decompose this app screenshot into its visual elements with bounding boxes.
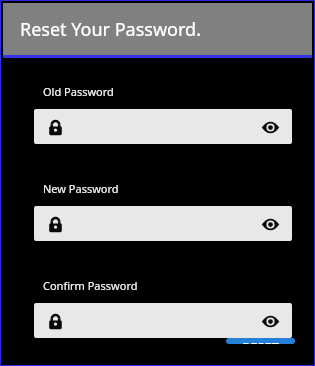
button[interactable]: Show password <box>34 206 292 241</box>
button[interactable]: Show password <box>259 310 281 332</box>
staticText: New Password <box>43 181 119 196</box>
button[interactable]: Show password <box>259 213 281 235</box>
button[interactable]: Show password <box>34 303 292 338</box>
button[interactable]: Show password <box>34 109 292 144</box>
button[interactable]: Reset Your Password. <box>3 3 312 55</box>
staticText: Old Password <box>43 84 114 99</box>
staticText: Confirm Password <box>43 278 138 293</box>
staticText: RESET <box>242 338 279 344</box>
button[interactable]: Show password <box>259 116 281 138</box>
staticText: Reset Your Password. <box>20 17 201 42</box>
button[interactable]: RESET <box>226 338 295 344</box>
